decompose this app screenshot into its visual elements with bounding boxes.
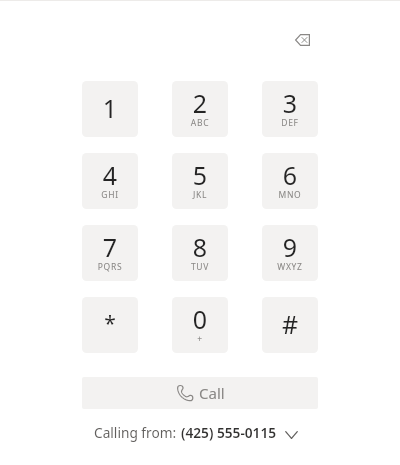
staticText: 6 [262, 158, 318, 192]
staticText: PQRS [82, 261, 138, 273]
staticText: 0 [172, 302, 228, 336]
button[interactable]: (425) 555-0115 [181, 423, 298, 442]
button[interactable]: 9 [262, 225, 318, 281]
button[interactable]: * [82, 297, 138, 353]
button[interactable]: 8 [172, 225, 228, 281]
staticText: 8 [172, 230, 228, 264]
staticText: WXYZ [262, 261, 318, 273]
staticText: (425) 555-0115 [181, 423, 277, 442]
button[interactable]: 7 [82, 225, 138, 281]
button[interactable]: Call [82, 377, 318, 409]
staticText: # [262, 307, 318, 341]
staticText: + [172, 333, 228, 345]
staticText: 9 [262, 230, 318, 264]
staticText: GHI [82, 189, 138, 201]
staticText: JKL [172, 189, 228, 201]
button[interactable]: 5 [172, 153, 228, 209]
staticText: 4 [82, 158, 138, 192]
staticText: * [82, 309, 138, 338]
button[interactable]: Backspace [290, 28, 314, 52]
staticText: 7 [82, 230, 138, 264]
button[interactable]: 6 [262, 153, 318, 209]
staticText: TUV [172, 261, 228, 273]
staticText: 2 [172, 86, 228, 120]
staticText: Call [199, 383, 225, 403]
staticText: 1 [82, 91, 138, 125]
button[interactable]: 0 [172, 297, 228, 353]
button[interactable]: 3 [262, 81, 318, 137]
staticText: Calling from: [94, 423, 177, 442]
button[interactable]: # [262, 297, 318, 353]
button[interactable]: 1 [82, 81, 138, 137]
button[interactable]: 4 [82, 153, 138, 209]
staticText: MNO [262, 189, 318, 201]
staticText: 5 [172, 158, 228, 192]
button[interactable]: 2 [172, 81, 228, 137]
staticText: 3 [262, 86, 318, 120]
staticText: ABC [172, 117, 228, 129]
staticText: DEF [262, 117, 318, 129]
